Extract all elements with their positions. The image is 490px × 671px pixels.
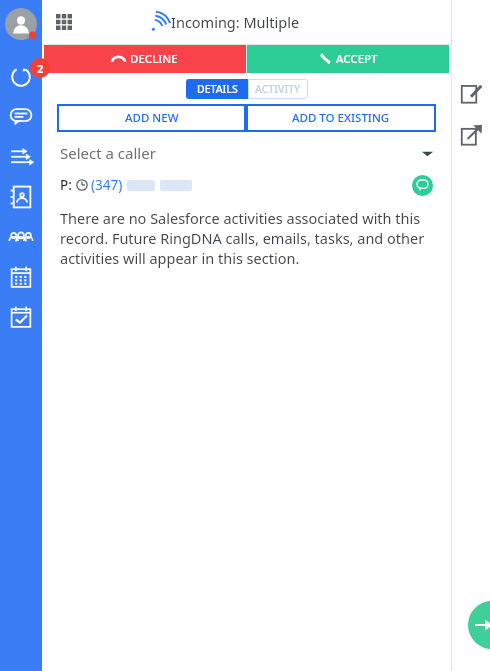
button[interactable]: Transfers — [6, 142, 36, 172]
button[interactable]: Profile — [5, 8, 37, 40]
button[interactable]: Call history — [6, 62, 36, 92]
button[interactable]: Apps menu — [48, 6, 80, 38]
button[interactable]: Tasks — [6, 302, 36, 332]
button[interactable]: Messages — [6, 102, 36, 132]
staticText: ACCEPT — [336, 51, 378, 67]
staticText: ACTIVITY — [255, 82, 301, 96]
staticText: Select a caller — [60, 143, 156, 163]
staticText: Incoming: Multiple — [171, 12, 300, 32]
button[interactable]: Calendar — [6, 262, 36, 292]
button[interactable]: ADD TO EXISTING — [246, 104, 436, 132]
button[interactable]: Local time — [76, 179, 88, 191]
button[interactable]: Contacts — [6, 182, 36, 212]
staticText: DECLINE — [130, 51, 178, 67]
staticText: ADD NEW — [125, 110, 179, 126]
staticText: DETAILS — [197, 82, 238, 96]
button[interactable]: 2 notifications — [30, 58, 50, 78]
button[interactable]: DETAILS — [186, 79, 248, 99]
button[interactable]: Send message — [412, 175, 433, 196]
button[interactable]: ADD NEW — [57, 104, 246, 132]
button[interactable]: Teams — [6, 222, 36, 252]
staticText: (347) — [91, 176, 123, 194]
staticText: 2 — [37, 61, 44, 76]
button[interactable]: Next — [468, 601, 490, 649]
button[interactable]: Edit — [456, 78, 486, 108]
button[interactable]: DECLINE — [44, 45, 246, 73]
button[interactable]: ACCEPT — [247, 45, 449, 73]
staticText: P: — [60, 176, 72, 194]
button[interactable]: ACTIVITY — [248, 79, 308, 99]
button[interactable]: Open in new window — [456, 120, 486, 150]
button[interactable]: Select a caller — [60, 140, 433, 166]
staticText: There are no Salesforce activities assoc… — [60, 208, 433, 268]
staticText: ADD TO EXISTING — [292, 110, 390, 126]
button[interactable]: (347) — [91, 176, 123, 194]
